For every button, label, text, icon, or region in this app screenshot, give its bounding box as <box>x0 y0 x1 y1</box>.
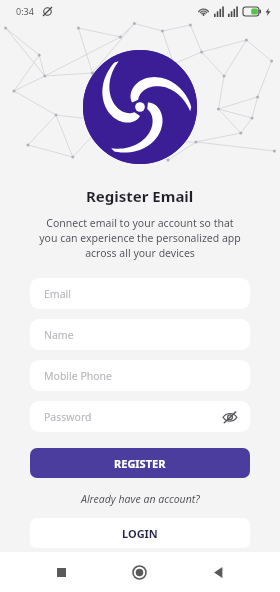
button[interactable]: Email <box>30 278 250 309</box>
staticText: Password <box>44 410 92 424</box>
staticText: Already have an account? <box>81 492 200 506</box>
button[interactable]: Show password <box>222 409 238 425</box>
button[interactable]: Home <box>122 555 156 589</box>
staticText: Email <box>44 287 71 301</box>
button[interactable]: Name <box>30 319 250 350</box>
button[interactable]: Recent apps <box>44 555 78 589</box>
staticText: Name <box>44 328 74 342</box>
staticText: REGISTER <box>114 456 166 471</box>
button[interactable]: Mobile Phone <box>30 360 250 391</box>
staticText: Connect email to your account so that yo… <box>39 216 241 260</box>
staticText: 0:34 <box>16 5 34 17</box>
button[interactable]: Password <box>30 401 250 432</box>
staticText: LOGIN <box>122 526 158 541</box>
button[interactable]: REGISTER <box>30 448 250 478</box>
button[interactable]: Back <box>201 555 235 589</box>
staticText: Mobile Phone <box>44 369 113 383</box>
button[interactable]: LOGIN <box>30 518 250 548</box>
staticText: Register Email <box>86 186 194 206</box>
